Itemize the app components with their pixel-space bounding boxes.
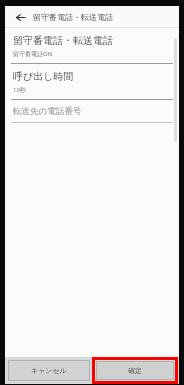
staticText: 留守番電話・転送電話 — [13, 34, 113, 47]
staticText: 転送先の電話番号 — [13, 106, 82, 117]
button[interactable]: 戻る — [12, 9, 28, 25]
staticText: 留守番電話ON — [13, 50, 53, 58]
button[interactable]: 確定 — [96, 361, 174, 380]
staticText: 留守番電話・転送電話 — [33, 12, 113, 22]
button[interactable]: 転送先の電話番号 — [5, 100, 179, 122]
button[interactable]: キャンセル — [8, 360, 90, 381]
staticText: 確定 — [128, 366, 142, 375]
staticText: 呼び出し時間 — [13, 70, 74, 83]
button[interactable]: 留守番電話・転送電話 — [5, 28, 179, 63]
button[interactable]: 呼び出し時間 — [5, 64, 179, 99]
staticText: キャンセル — [31, 366, 67, 375]
staticText: 10秒 — [13, 86, 26, 94]
